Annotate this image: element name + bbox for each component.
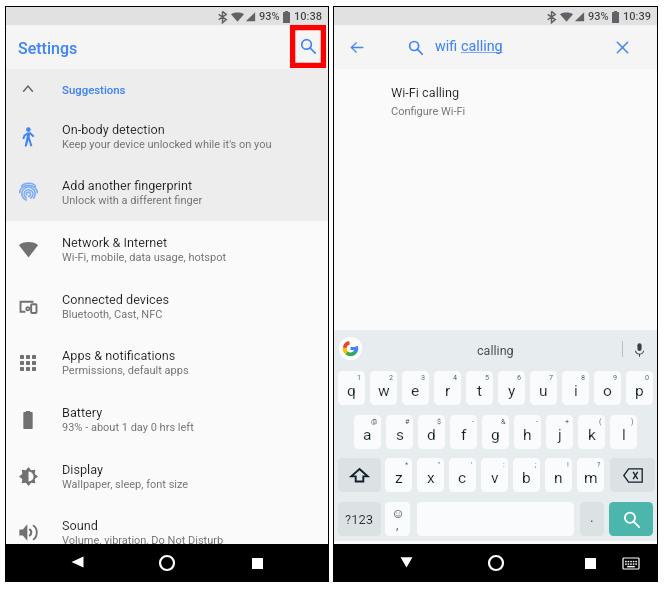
button[interactable]: x: [417, 458, 444, 492]
staticText: Suggestions: [62, 83, 126, 96]
staticText: Battery: [62, 405, 103, 420]
staticText: &: [501, 417, 506, 425]
staticText: -: [536, 417, 538, 425]
staticText: Network & Internet: [62, 235, 168, 250]
staticText: f: [461, 426, 467, 444]
staticText: Add another fingerprint: [62, 178, 193, 193]
button[interactable]: Search: [290, 25, 326, 68]
button[interactable]: w: [370, 371, 397, 405]
staticText: @: [371, 417, 378, 425]
staticText: r: [445, 382, 451, 400]
staticText: 6: [517, 373, 522, 381]
staticText: y: [508, 382, 516, 400]
button[interactable]: Voice input: [631, 341, 647, 359]
staticText: 3: [421, 373, 426, 381]
button[interactable]: i: [562, 371, 589, 405]
staticText: 93% - about 1 day 0 hrs left: [62, 421, 194, 434]
button[interactable]: z: [385, 458, 412, 492]
staticText: #: [405, 417, 410, 425]
button[interactable]: m: [577, 458, 604, 492]
button[interactable]: Search: [609, 502, 653, 536]
staticText: v: [491, 469, 499, 487]
button[interactable]: y: [498, 371, 525, 405]
button[interactable]: n: [545, 458, 572, 492]
staticText: -: [472, 417, 474, 425]
button[interactable]: On-body detection: [6, 108, 328, 165]
staticText: calling: [477, 343, 514, 358]
staticText: u: [539, 382, 548, 400]
staticText: s: [396, 426, 404, 444]
button[interactable]: o: [594, 371, 621, 405]
button[interactable]: Back: [62, 554, 92, 569]
button[interactable]: c: [449, 458, 476, 492]
button[interactable]: e: [402, 371, 429, 405]
button[interactable]: h: [514, 415, 541, 449]
button[interactable]: Network & Internet: [6, 221, 328, 278]
staticText: ": [438, 460, 441, 468]
staticText: x: [427, 469, 435, 487]
staticText: *: [405, 460, 409, 468]
button[interactable]: v: [481, 458, 508, 492]
button[interactable]: s: [386, 415, 413, 449]
button[interactable]: d: [418, 415, 445, 449]
button[interactable]: Sound: [6, 504, 328, 561]
button[interactable]: r: [434, 371, 461, 405]
button[interactable]: Display: [6, 448, 328, 505]
button[interactable]: l: [610, 415, 637, 449]
button[interactable]: k: [578, 415, 605, 449]
button[interactable]: Wi-Fi calling: [334, 69, 657, 126]
button[interactable]: j: [546, 415, 573, 449]
staticText: ?: [597, 460, 601, 468]
staticText: Permissions, default apps: [62, 364, 189, 377]
staticText: 0: [645, 373, 650, 381]
staticText: ?123: [345, 512, 374, 527]
staticText: k: [588, 426, 596, 444]
button[interactable]: g: [482, 415, 509, 449]
button[interactable]: Google: [339, 337, 362, 360]
button[interactable]: q: [338, 371, 365, 405]
staticText: 9: [613, 373, 618, 381]
button[interactable]: Add another fingerprint: [6, 164, 328, 221]
staticText: w: [378, 382, 390, 400]
button[interactable]: Period: [580, 502, 604, 536]
staticText: (: [599, 417, 602, 425]
button[interactable]: Recents: [575, 548, 605, 578]
staticText: wifi: [435, 38, 461, 55]
button[interactable]: Connected devices: [6, 278, 328, 335]
button[interactable]: Home: [481, 548, 511, 578]
button[interactable]: Change keyboard: [618, 550, 644, 576]
button[interactable]: a: [354, 415, 381, 449]
button[interactable]: b: [513, 458, 540, 492]
staticText: calling: [461, 38, 503, 55]
button[interactable]: Back: [340, 30, 374, 64]
button[interactable]: Apps & notifications: [6, 334, 328, 391]
button[interactable]: Symbols: [338, 502, 381, 536]
button[interactable]: Suggestions: [6, 69, 328, 107]
staticText: 1: [357, 373, 362, 381]
button[interactable]: Backspace: [610, 458, 655, 492]
staticText: Connected devices: [62, 292, 170, 307]
staticText: Wi-Fi calling: [391, 85, 460, 100]
button[interactable]: Shift: [338, 458, 381, 492]
staticText: Wallpaper, sleep, font size: [62, 478, 189, 491]
staticText: On-body detection: [62, 122, 165, 137]
staticText: Sound: [62, 518, 98, 533]
staticText: z: [395, 469, 403, 487]
staticText: Volume, vibration, Do Not Disturb: [62, 534, 224, 547]
staticText: 10:39: [623, 10, 651, 23]
button[interactable]: Comma: [385, 502, 410, 536]
button[interactable]: Battery: [6, 391, 328, 448]
button[interactable]: Home: [152, 548, 182, 578]
button[interactable]: p: [626, 371, 653, 405]
button[interactable]: Clear search: [605, 30, 639, 64]
button[interactable]: Hide keyboard: [391, 554, 421, 569]
staticText: ': [471, 460, 473, 468]
staticText: Unlock with a different finger: [62, 194, 203, 207]
button[interactable]: f: [450, 415, 477, 449]
button[interactable]: Recents: [242, 548, 272, 578]
button[interactable]: t: [466, 371, 493, 405]
staticText: a: [363, 426, 372, 444]
button[interactable]: u: [530, 371, 557, 405]
staticText: 93%: [588, 10, 609, 23]
